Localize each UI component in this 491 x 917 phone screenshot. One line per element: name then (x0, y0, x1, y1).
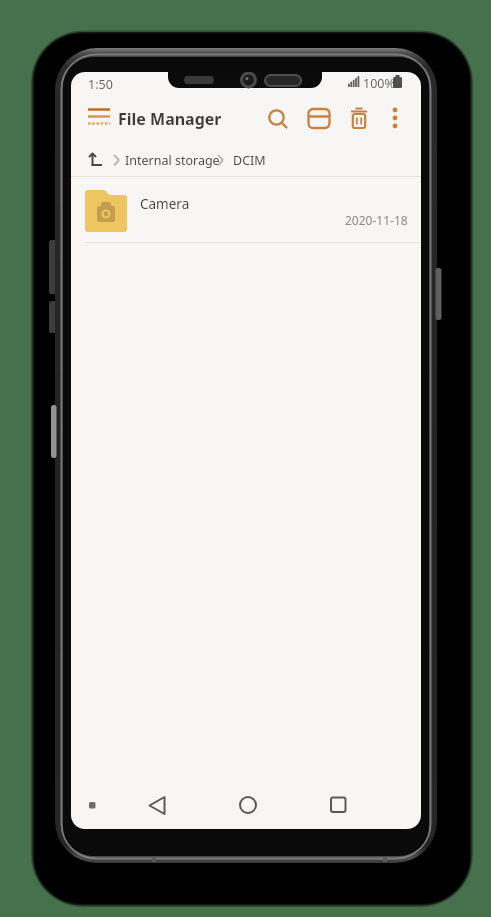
staticText: 2020-11-18 (345, 212, 408, 228)
button[interactable] (228, 785, 268, 825)
button[interactable]: DCIM (231, 146, 264, 163)
button[interactable]: Camera (71, 177, 421, 242)
staticText: 100% (363, 75, 395, 92)
button[interactable] (137, 785, 177, 825)
button[interactable] (318, 785, 358, 825)
button[interactable] (80, 145, 110, 175)
button[interactable]: Internal storage (123, 146, 218, 163)
staticText: File Manager (118, 108, 222, 130)
button[interactable] (261, 102, 295, 136)
staticText: 1:50 (88, 76, 113, 93)
button[interactable] (380, 101, 410, 135)
button[interactable] (342, 101, 376, 135)
staticText: Camera (140, 195, 190, 213)
button[interactable] (302, 101, 336, 135)
button[interactable] (77, 790, 107, 820)
staticText: Internal storage (125, 152, 220, 169)
staticText: DCIM (233, 152, 266, 169)
button[interactable] (81, 101, 117, 135)
